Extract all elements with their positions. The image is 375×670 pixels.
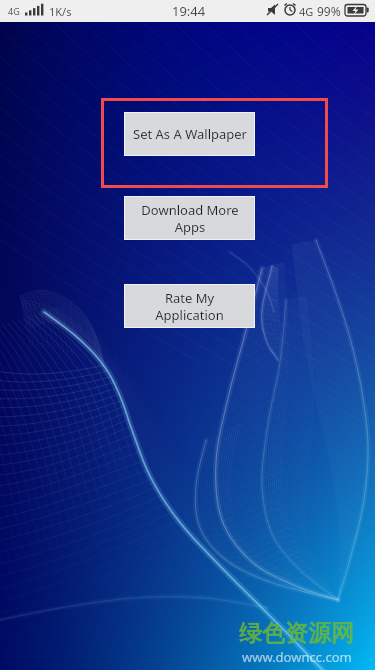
staticText: Set As A Wallpaper	[133, 125, 247, 143]
button[interactable]: Download More Apps	[124, 196, 255, 240]
button[interactable]: Set As A Wallpaper	[124, 112, 255, 156]
staticText: 19:44	[172, 2, 206, 20]
staticText: Download More Apps	[141, 201, 239, 236]
staticText: 4G	[299, 4, 314, 19]
staticText: www.downcc.com	[242, 648, 352, 666]
staticText: 1K/s	[49, 4, 72, 19]
staticText: 99%	[317, 3, 341, 19]
staticText: Rate My Application	[155, 289, 224, 324]
staticText: 绿色资源网	[239, 619, 354, 648]
button[interactable]: Rate My Application	[124, 284, 255, 328]
staticText: 4G	[8, 5, 20, 17]
